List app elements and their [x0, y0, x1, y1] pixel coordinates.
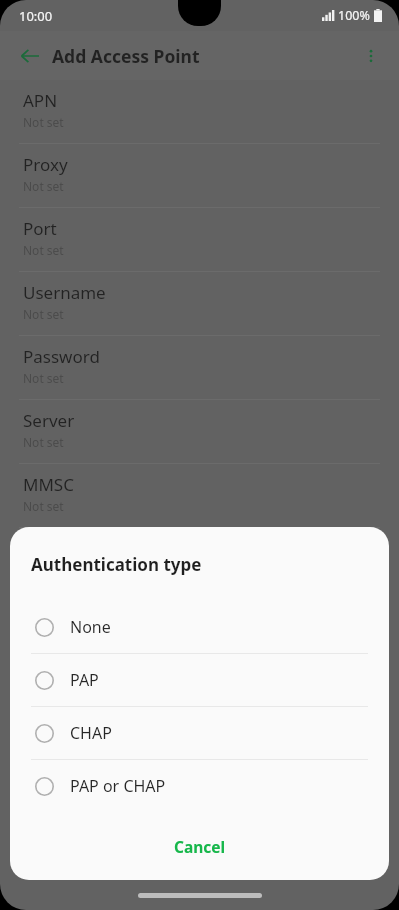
- staticText: Not set: [23, 306, 64, 322]
- staticText: Authentication type: [31, 553, 202, 576]
- staticText: CHAP: [70, 722, 112, 744]
- staticText: Cancel: [174, 836, 226, 857]
- staticText: APN: [23, 89, 58, 112]
- staticText: Add Access Point: [52, 44, 200, 68]
- button[interactable]: APN: [0, 80, 399, 143]
- staticText: 10:00: [19, 7, 53, 25]
- button[interactable]: MMSC: [0, 463, 399, 527]
- button[interactable]: Password: [0, 335, 399, 399]
- staticText: Not set: [23, 434, 64, 450]
- button[interactable]: Cancel: [10, 826, 389, 866]
- button[interactable]: Proxy: [0, 143, 399, 207]
- staticText: Port: [23, 217, 57, 240]
- staticText: Not set: [23, 370, 64, 386]
- staticText: MMSC: [23, 473, 74, 496]
- button[interactable]: Port: [0, 207, 399, 271]
- staticText: Not set: [23, 114, 64, 130]
- staticText: Username: [23, 281, 106, 304]
- button[interactable]: Server: [0, 399, 399, 463]
- button[interactable]: More options: [353, 38, 389, 74]
- button[interactable]: PAP or CHAP: [10, 760, 389, 812]
- staticText: 100%: [338, 7, 370, 24]
- staticText: Not set: [23, 498, 64, 514]
- button[interactable]: MMS proxy: [0, 527, 399, 591]
- button[interactable]: None: [10, 601, 389, 653]
- staticText: Not set: [23, 178, 64, 194]
- staticText: Password: [23, 345, 100, 368]
- staticText: Not set: [23, 242, 64, 258]
- button[interactable]: PAP: [10, 654, 389, 706]
- button[interactable]: Username: [0, 271, 399, 335]
- button[interactable]: CHAP: [10, 707, 389, 759]
- staticText: None: [70, 616, 111, 638]
- staticText: Not set: [23, 562, 64, 578]
- button[interactable]: Back: [12, 38, 48, 74]
- staticText: MMS proxy: [23, 537, 113, 560]
- staticText: Server: [23, 409, 75, 432]
- staticText: PAP: [70, 669, 99, 691]
- staticText: PAP or CHAP: [70, 775, 166, 797]
- staticText: Proxy: [23, 153, 68, 176]
